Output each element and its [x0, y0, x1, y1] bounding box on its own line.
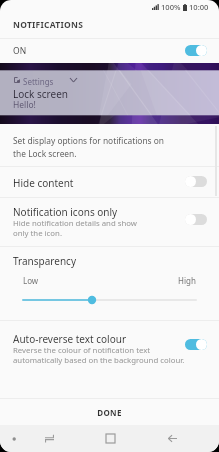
button[interactable]: Notification icons only	[0, 198, 219, 246]
staticText: DONE	[97, 407, 122, 418]
button[interactable]	[0, 292, 219, 308]
button[interactable]: Recents	[38, 425, 60, 452]
staticText: 10:00	[189, 2, 209, 12]
button[interactable]: Hide content	[0, 167, 219, 197]
staticText: Low	[23, 275, 39, 286]
button[interactable]: DONE	[0, 399, 219, 425]
staticText: Hello!	[13, 99, 36, 111]
button[interactable]: Home	[99, 425, 121, 452]
staticText: High	[178, 275, 196, 286]
staticText: Settings	[23, 76, 54, 87]
staticText: ON	[13, 45, 27, 57]
button[interactable]: Back	[161, 425, 183, 452]
button[interactable]: Auto-reverse text colour	[0, 321, 219, 398]
staticText: Transparency	[13, 254, 76, 268]
staticText: NOTIFICATIONS	[13, 19, 84, 31]
staticText: Hide notification details and show only …	[13, 218, 137, 238]
staticText: Auto-reverse text colour	[13, 332, 127, 346]
staticText: Reverse the colour of notification text …	[13, 345, 185, 365]
staticText: Hide content	[13, 176, 74, 190]
button[interactable]: ON	[0, 39, 219, 63]
staticText: 100%	[161, 2, 181, 12]
staticText: Set display options for notifications on…	[13, 135, 165, 159]
staticText: Notification icons only	[13, 205, 118, 219]
staticText: Lock screen	[13, 87, 69, 101]
